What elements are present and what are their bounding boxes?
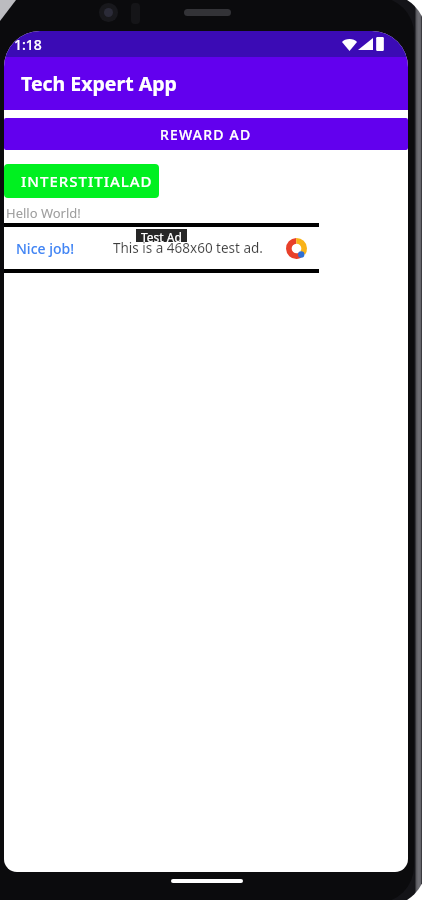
button[interactable]: REWARD AD	[4, 118, 408, 150]
other: AdMob	[286, 238, 307, 259]
other: Wi-Fi	[342, 38, 357, 51]
staticText: Hello World!	[6, 204, 81, 222]
staticText: Nice job!	[16, 239, 75, 258]
button[interactable]: Nice job!	[4, 223, 319, 273]
staticText: Test Ad	[141, 229, 182, 242]
other: Battery	[374, 37, 386, 51]
staticText: INTERSTITIALAD	[21, 171, 153, 191]
staticText: Tech Expert App	[21, 70, 177, 97]
staticText: REWARD AD	[160, 125, 252, 144]
staticText: This is a 468x60 test ad.	[113, 239, 263, 257]
other: Signal	[358, 38, 373, 50]
staticText: 1:18	[14, 35, 42, 54]
button[interactable]: INTERSTITIALAD	[4, 164, 159, 198]
